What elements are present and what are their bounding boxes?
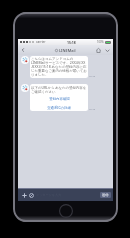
staticText: こちらはコムアンドコムのLINEMailサービスです。2XX4年XX月XX日15… <box>31 57 87 77</box>
staticText: carrier <box>36 40 46 44</box>
staticText: 15:18 <box>89 107 96 110</box>
staticText: 送信 <box>102 193 109 197</box>
staticText: 以下のURLからあなたの登録内容をご確認ください <box>31 85 87 94</box>
staticText: 交通系ICの詳細 <box>47 105 71 110</box>
staticText: 15:18 <box>89 74 96 77</box>
staticText: 15:18 <box>67 40 76 45</box>
button[interactable]: 送信 <box>100 192 111 198</box>
staticText: LINEMail <box>59 48 76 53</box>
button[interactable]: Profile image <box>21 56 29 64</box>
button[interactable]: More options <box>103 45 112 55</box>
button[interactable]: 登録内容確認 <box>30 95 88 103</box>
staticText: 登録内容確認 <box>49 97 70 101</box>
button[interactable]: 交通系ICの詳細 <box>30 103 88 111</box>
staticText: 100% <box>97 40 104 44</box>
button[interactable]: Back <box>18 45 27 55</box>
button[interactable]: Profile image <box>21 84 29 92</box>
button[interactable]: Add attachment <box>21 192 27 198</box>
button[interactable]: Home <box>94 45 103 55</box>
button[interactable]: Emoji <box>28 192 34 198</box>
